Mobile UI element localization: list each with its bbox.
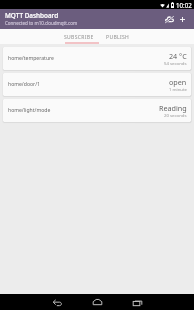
button[interactable]: Recent apps (117, 294, 157, 310)
staticText: SUBSCRIBE (64, 34, 94, 41)
staticText: 24 °C (169, 51, 187, 61)
staticText: 10:02 (176, 1, 192, 9)
staticText: home/light/mode (8, 107, 51, 114)
staticText: Reading (159, 103, 187, 113)
staticText: PUBLISH (106, 34, 130, 41)
staticText: 20 seconds (164, 112, 187, 118)
button[interactable]: Home (77, 294, 117, 310)
staticText: MQTT Dashboard (5, 11, 59, 20)
button[interactable]: Back (37, 294, 77, 310)
staticText: home/door/1 (8, 81, 40, 88)
button[interactable]: Add topic (175, 9, 190, 29)
button[interactable]: home/door/1 (3, 73, 191, 96)
button[interactable]: home/light/mode (3, 99, 191, 122)
button[interactable]: PUBLISH (99, 30, 136, 45)
staticText: 1 minute (169, 86, 187, 92)
button[interactable]: Disconnect (160, 9, 175, 29)
staticText: 54 seconds (164, 60, 187, 66)
staticText: open (169, 77, 187, 87)
button[interactable]: home/temperature (3, 47, 191, 70)
staticText: home/temperature (8, 55, 54, 62)
staticText: Connected to m10.cloudmqtt.com (5, 20, 78, 26)
button[interactable]: SUBSCRIBE (58, 30, 99, 45)
